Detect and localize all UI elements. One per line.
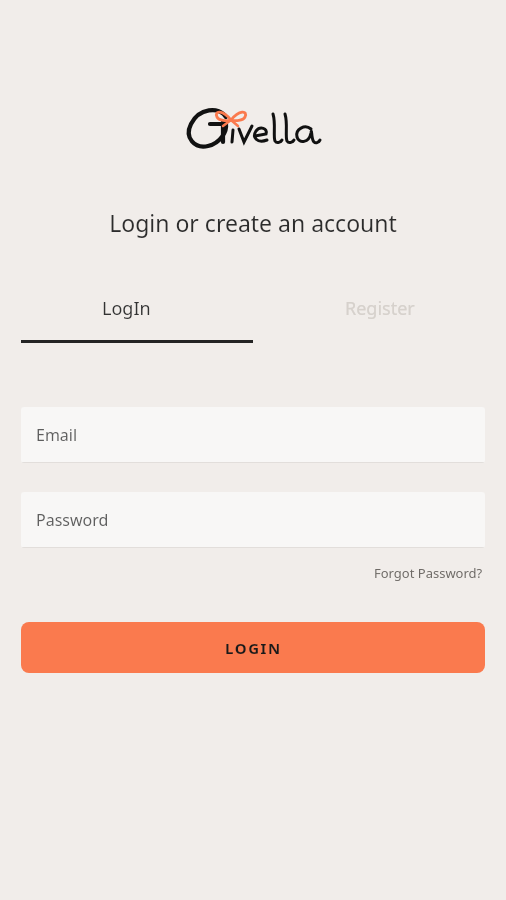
staticText: Password (36, 509, 109, 531)
staticText: Forgot Password? (374, 564, 483, 582)
button[interactable]: Forgot Password? (372, 562, 485, 584)
button[interactable]: LogIn (0, 292, 253, 343)
button[interactable]: Email (21, 407, 485, 463)
staticText: LogIn (102, 296, 151, 321)
staticText: Email (36, 424, 78, 446)
button[interactable]: Register (253, 292, 506, 343)
other: Givella logo (181, 100, 325, 152)
staticText: Register (345, 296, 415, 321)
button[interactable]: LOGIN (21, 622, 485, 673)
button[interactable]: Password (21, 492, 485, 548)
staticText: LOGIN (225, 638, 282, 658)
staticText: Login or create an account (0, 207, 506, 238)
